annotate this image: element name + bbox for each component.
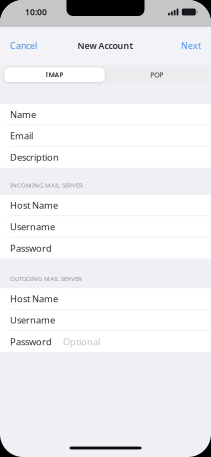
button[interactable]: Username	[0, 310, 211, 331]
staticText: INCOMING MAIL SERVER	[10, 181, 83, 189]
staticText: New Account	[77, 39, 133, 51]
staticText: Next	[181, 39, 201, 51]
staticText: Host Name	[10, 292, 58, 305]
button[interactable]: Username	[0, 216, 211, 237]
staticText: Name	[10, 108, 36, 121]
staticText: Cancel	[10, 39, 37, 51]
button[interactable]: Description	[0, 147, 211, 168]
staticText: Password	[10, 335, 52, 348]
button[interactable]: Host Name	[0, 288, 211, 310]
button[interactable]: Password	[0, 331, 211, 352]
button[interactable]: Next	[172, 27, 211, 64]
button[interactable]: Email	[0, 125, 211, 147]
button[interactable]: Name	[0, 104, 211, 125]
staticText: Email	[10, 129, 33, 142]
button[interactable]: Host Name	[0, 195, 211, 216]
staticText: POP	[150, 70, 163, 79]
button[interactable]: IMAP	[3, 66, 106, 83]
button[interactable]: Password	[0, 237, 211, 259]
staticText: OUTGOING MAIL SERVER	[10, 274, 82, 283]
staticText: 10:00	[25, 6, 47, 18]
button[interactable]: POP	[106, 66, 208, 83]
staticText: Host Name	[10, 199, 58, 212]
staticText: Username	[10, 314, 55, 326]
staticText: Username	[10, 220, 55, 233]
staticText: Optional	[63, 335, 100, 348]
staticText: IMAP	[45, 70, 63, 79]
button[interactable]: Cancel	[0, 27, 46, 64]
staticText: Description	[10, 151, 59, 164]
staticText: Password	[10, 242, 52, 254]
